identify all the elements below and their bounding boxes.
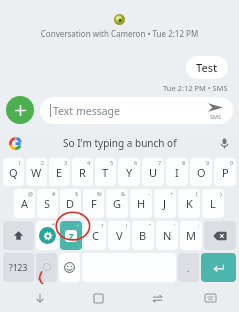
button[interactable]: W <box>26 158 47 186</box>
button[interactable]: Text message <box>40 97 233 124</box>
button[interactable]: Y <box>118 158 140 186</box>
button[interactable]: C <box>84 221 106 250</box>
button[interactable]: Clipboard <box>60 221 82 250</box>
staticText: U <box>149 165 158 180</box>
staticText: E <box>56 165 63 180</box>
button[interactable]: S <box>37 189 58 218</box>
button[interactable]: B <box>132 221 154 250</box>
button[interactable]: Voice input <box>216 135 232 151</box>
staticText: : <box>198 222 200 229</box>
staticText: 6 <box>134 159 138 166</box>
staticText: J <box>163 196 167 211</box>
button[interactable]: Shift <box>3 221 34 250</box>
button[interactable]: Test <box>186 56 228 79</box>
button[interactable]: Add attachment <box>6 96 34 124</box>
button[interactable]: Comma <box>36 253 57 282</box>
staticText: N <box>163 228 172 243</box>
staticText: , <box>38 272 40 282</box>
button[interactable]: K <box>178 189 200 218</box>
staticText: C <box>92 228 99 243</box>
staticText: A <box>21 196 29 211</box>
staticText: 2 <box>41 159 45 166</box>
staticText: M <box>186 228 196 243</box>
staticText: " <box>149 222 152 229</box>
staticText: $ <box>75 190 79 197</box>
button[interactable]: G <box>106 189 128 218</box>
staticText: 9 <box>206 159 210 166</box>
button[interactable]: A <box>14 189 35 218</box>
button[interactable]: P <box>214 158 236 186</box>
staticText: I <box>175 165 179 180</box>
button[interactable]: E <box>49 158 70 186</box>
button[interactable]: Google <box>7 135 23 151</box>
button[interactable]: T <box>95 158 116 186</box>
button[interactable]: V <box>108 221 130 250</box>
button[interactable]: Enter <box>201 253 236 282</box>
staticText: ' <box>174 222 176 229</box>
staticText: G <box>113 196 122 211</box>
button[interactable]: So I'm typing a bunch of <box>23 130 216 156</box>
staticText: ?123 <box>9 262 28 274</box>
other: Emoji <box>64 262 75 273</box>
button[interactable]: Emoji <box>59 253 80 282</box>
button[interactable]: Q <box>3 158 24 186</box>
staticText: 7 <box>158 159 162 166</box>
button[interactable]: N <box>156 221 178 250</box>
staticText: P <box>222 165 229 180</box>
button[interactable]: R <box>72 158 93 186</box>
staticText: ! <box>126 222 128 229</box>
button[interactable]: O <box>190 158 212 186</box>
button[interactable]: Keyboard <box>194 284 227 312</box>
button[interactable]: Period <box>178 253 199 282</box>
staticText: 4 <box>87 159 91 166</box>
staticText: . <box>187 262 190 274</box>
button[interactable]: I <box>166 158 188 186</box>
button[interactable]: Switch input method <box>141 284 174 312</box>
staticText: L <box>210 196 216 211</box>
staticText: V <box>116 228 123 243</box>
staticText: B <box>139 228 147 243</box>
button[interactable]: D <box>60 189 81 218</box>
staticText: ~ <box>76 221 80 228</box>
button[interactable]: ?123 <box>3 253 34 282</box>
staticText: ( <box>196 190 198 197</box>
staticText: 1 <box>18 159 22 166</box>
button[interactable]: U <box>142 158 164 186</box>
staticText: W <box>31 165 42 180</box>
staticText: So I'm typing a bunch of <box>63 136 177 150</box>
staticText: * <box>52 221 56 228</box>
staticText: & <box>121 190 126 197</box>
staticText: 0 <box>230 159 234 166</box>
staticText: Test <box>196 60 218 75</box>
staticText: Z <box>69 231 74 242</box>
button[interactable]: Settings <box>36 221 58 250</box>
staticText: SMS <box>210 113 222 120</box>
staticText: Text message <box>53 104 120 118</box>
button[interactable]: L <box>202 189 224 218</box>
staticText: + <box>170 190 174 197</box>
staticText: Tue 2:12 PM • SMS <box>163 83 228 93</box>
staticText: Conversation with Cameron • Tue 2:12 PM <box>0 28 239 39</box>
button[interactable]: Hide keyboard <box>23 284 56 312</box>
staticText: ? <box>101 222 104 229</box>
button[interactable]: Send SMS <box>208 102 223 120</box>
button[interactable]: Home <box>82 284 115 312</box>
button[interactable]: J <box>154 189 176 218</box>
staticText: T <box>102 165 109 180</box>
staticText: # <box>52 190 56 197</box>
staticText: R <box>79 165 86 180</box>
staticText: - <box>148 190 150 197</box>
staticText: S <box>44 196 51 211</box>
staticText: 8 <box>182 159 186 166</box>
button[interactable]: H <box>130 189 152 218</box>
staticText: % <box>97 190 102 197</box>
button[interactable]: M <box>180 221 202 250</box>
staticText: D <box>66 196 75 211</box>
staticText: 3 <box>64 159 68 166</box>
button[interactable]: Backspace <box>204 221 236 250</box>
staticText: ) <box>220 190 222 197</box>
staticText: @ <box>28 190 33 197</box>
button[interactable]: F <box>83 189 104 218</box>
staticText: O <box>197 165 206 180</box>
